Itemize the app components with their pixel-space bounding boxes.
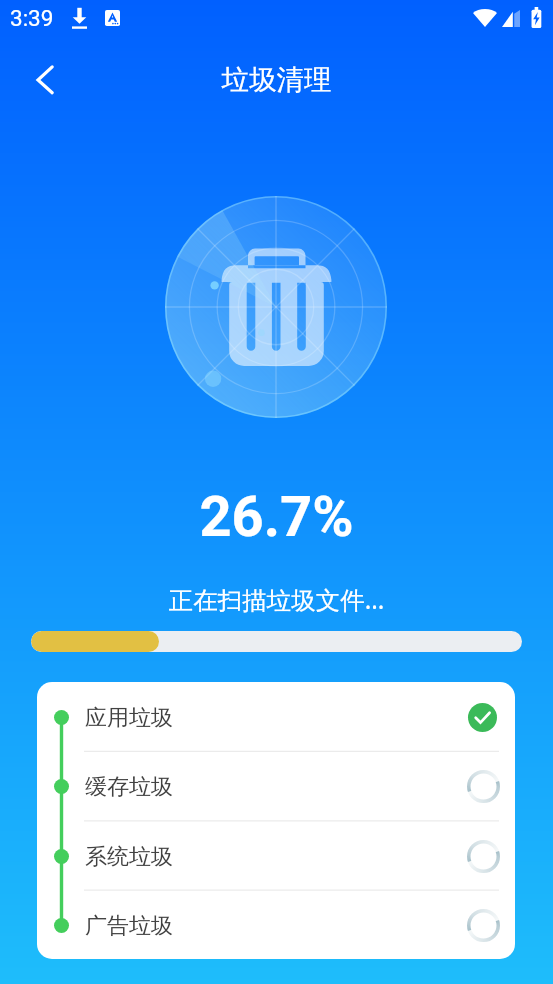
staticText: 3:39 xyxy=(10,5,54,31)
button[interactable]: 应用垃圾 xyxy=(37,683,515,752)
staticText: 26.7% xyxy=(0,484,553,550)
button[interactable]: 系统垃圾 xyxy=(37,822,515,891)
staticText: 垃圾清理 xyxy=(0,63,553,98)
staticText: 缓存垃圾 xyxy=(85,773,173,801)
button[interactable]: 缓存垃圾 xyxy=(37,752,515,821)
staticText: 正在扫描垃圾文件... xyxy=(0,583,553,616)
staticText: 广告垃圾 xyxy=(85,912,173,940)
button[interactable]: Back xyxy=(22,56,70,104)
button[interactable]: 广告垃圾 xyxy=(37,891,515,959)
staticText: 应用垃圾 xyxy=(85,704,173,732)
staticText: 系统垃圾 xyxy=(85,843,173,871)
